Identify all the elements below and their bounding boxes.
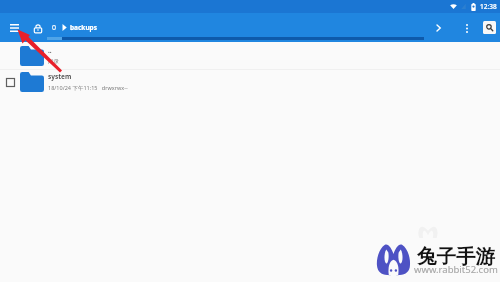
staticText: 18/10/24 下午11:15 drwxrwx-- — [48, 84, 128, 92]
button[interactable]: Search — [483, 21, 496, 34]
staticText: 0 — [52, 23, 57, 33]
staticText: .. — [48, 46, 52, 55]
staticText: system — [48, 72, 72, 81]
staticText: 12:38 — [480, 2, 497, 11]
button[interactable]: Navigation drawer — [6, 19, 23, 36]
button[interactable]: .. — [0, 42, 500, 69]
staticText: backups — [70, 23, 97, 32]
button[interactable]: system — [0, 70, 500, 94]
staticText: 目录 — [48, 58, 59, 65]
button[interactable]: More options — [458, 19, 476, 37]
button[interactable]: Lock — [30, 20, 46, 36]
button[interactable]: Forward — [429, 19, 447, 37]
staticText: 兔子手游 — [417, 244, 495, 269]
staticText: www.rabbit52.com — [414, 263, 498, 276]
